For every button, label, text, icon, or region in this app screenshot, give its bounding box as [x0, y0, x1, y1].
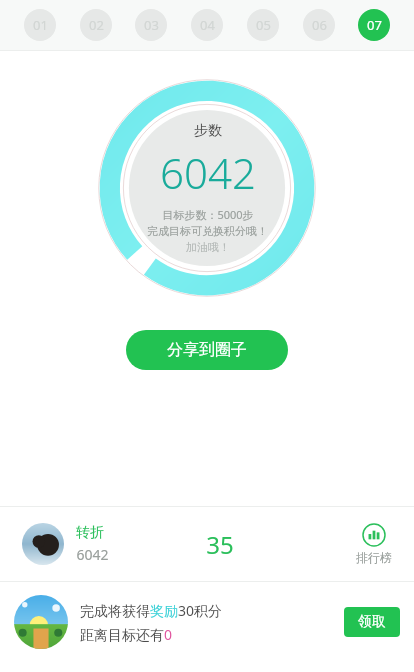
staticText: 领取 [358, 613, 386, 631]
staticText: 6042 [160, 144, 256, 201]
button[interactable]: 03 [135, 9, 167, 41]
staticText: 02 [89, 16, 104, 34]
staticText: 转折 [76, 524, 104, 542]
button[interactable]: 07 [358, 9, 390, 41]
staticText: 6042 [76, 545, 109, 564]
staticText: 加油哦！ [186, 240, 230, 254]
staticText: 01 [33, 16, 48, 34]
button[interactable]: 06 [303, 9, 335, 41]
staticText: 05 [256, 16, 271, 34]
staticText: 35 [206, 528, 234, 561]
staticText: 06 [312, 16, 327, 34]
button[interactable]: 02 [80, 9, 112, 41]
button[interactable]: 转折 [0, 507, 414, 581]
button[interactable]: 排行榜 [356, 523, 392, 565]
staticText: 07 [367, 16, 382, 34]
staticText: 04 [200, 16, 215, 34]
staticText: 分享到圈子 [167, 340, 247, 360]
button[interactable]: 04 [191, 9, 223, 41]
staticText: 03 [144, 16, 159, 34]
staticText: 步数 [194, 122, 222, 140]
button[interactable]: 01 [24, 9, 56, 41]
button[interactable]: 领取 [344, 607, 400, 637]
staticText: 目标步数：5000步 [162, 207, 254, 222]
button[interactable]: 分享到圈子 [126, 330, 288, 370]
staticText: 完成目标可兑换积分哦！ [147, 224, 268, 238]
staticText: 排行榜 [356, 550, 392, 565]
button[interactable]: 05 [247, 9, 279, 41]
staticText: 完成将获得奖励30积分 [80, 601, 223, 620]
staticText: 距离目标还有0 [80, 625, 173, 644]
